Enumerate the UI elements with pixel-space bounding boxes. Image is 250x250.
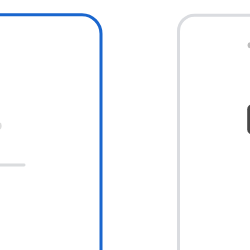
button[interactable]: Selected card — [0, 0, 101, 250]
button[interactable]: Next card — [179, 0, 250, 250]
